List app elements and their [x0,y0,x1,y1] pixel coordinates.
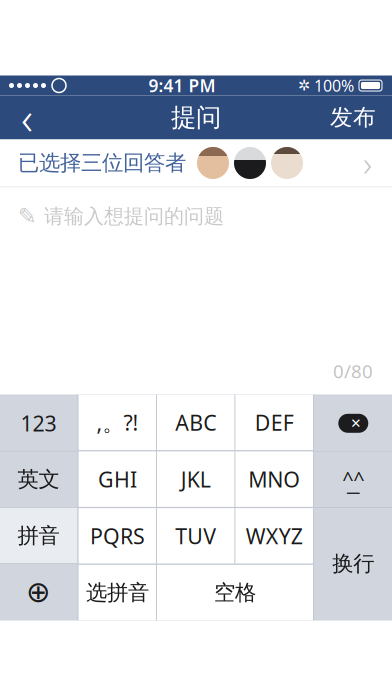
staticText: DEF [255,408,294,437]
staticText: 已选择三位回答者 [18,150,186,176]
button[interactable]: 英文 [0,452,77,507]
staticText: 拼音 [17,522,59,549]
button[interactable]: 拼音 [0,508,77,563]
button[interactable]: GHI [79,451,156,507]
button[interactable]: 表情 [314,452,392,507]
staticText: PQRS [90,522,145,550]
staticText: 换行 [332,551,374,577]
staticText: ⊕ [26,575,51,608]
staticText: › [363,140,372,186]
staticText: TUV [175,522,216,550]
button[interactable]: 换行 [314,508,392,619]
button[interactable]: DEF [235,395,313,450]
staticText: 0/80 [333,359,373,383]
button[interactable]: 发布 [314,95,392,139]
button[interactable]: 删除 [314,396,392,451]
staticText: 123 [20,409,56,437]
staticText: 发布 [330,104,376,131]
staticText: 100% [314,75,354,96]
button[interactable]: JKL [157,451,235,507]
button[interactable]: MNO [235,451,313,507]
staticText: ✲ [298,77,310,94]
staticText: 英文 [17,466,59,492]
staticText: 空格 [214,579,256,606]
button[interactable]: 选拼音 [79,565,156,620]
staticText: ABC [175,408,216,437]
staticText: ✕ [350,416,361,431]
staticText: 选拼音 [86,579,149,606]
button[interactable]: 空格 [157,565,313,620]
staticText: ✎ [18,203,37,229]
staticText: JKL [181,465,211,493]
button[interactable]: 切换键盘 [0,564,77,619]
button[interactable]: ABC [157,395,235,450]
button[interactable]: PQRS [79,508,156,563]
staticText: ^^ [342,465,364,492]
staticText: 提问 [171,102,221,133]
button[interactable]: ,。?! [79,395,156,450]
staticText: 请输入想提问的问题 [44,204,224,229]
button[interactable]: WXYZ [235,508,313,563]
staticText: ‹ [21,87,33,148]
button[interactable]: 已选择三位回答者 [0,139,392,187]
staticText: WXYZ [246,522,303,550]
button[interactable]: 返回 [0,95,54,139]
button[interactable]: TUV [157,508,235,563]
staticText: 9:41 PM [148,74,215,97]
staticText: MNO [248,465,300,493]
staticText: ,。?! [96,408,138,437]
button[interactable]: 123 [0,395,77,451]
staticText: GHI [98,465,137,493]
